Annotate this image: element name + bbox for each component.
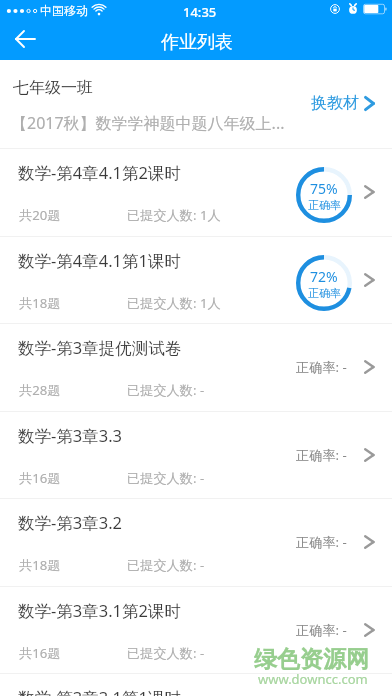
staticText: 正确率: - — [296, 446, 347, 464]
staticText: 数学-第3章3.1第2课时 — [18, 599, 181, 622]
staticText: 已提交人数: - — [127, 381, 205, 399]
staticText: 中国移动 — [40, 3, 88, 18]
staticText: 已提交人数: 1人 — [127, 206, 221, 224]
staticText: www.downcc.com — [258, 670, 368, 688]
button[interactable]: 数学-第3章3.1第1课时 — [0, 674, 392, 696]
staticText: 75% — [310, 179, 338, 198]
button[interactable]: 数学-第4章4.1第2课时 — [0, 149, 392, 236]
staticText: 七年级一班 — [13, 78, 93, 98]
staticText: 数学-第3章3.1第1课时 — [18, 686, 181, 696]
staticText: 已提交人数: 1人 — [127, 294, 221, 312]
staticText: 数学-第3章3.2 — [18, 511, 123, 534]
staticText: 数学-第4章4.1第2课时 — [18, 161, 181, 184]
staticText: 共28题 — [19, 381, 61, 399]
staticText: 正确率 — [308, 198, 341, 212]
staticText: 数学-第3章3.3 — [18, 424, 123, 447]
button[interactable]: 数学-第3章3.2 — [0, 499, 392, 586]
staticText: 72% — [310, 267, 338, 286]
button[interactable]: Back — [6, 20, 44, 58]
staticText: 共16题 — [19, 644, 61, 662]
staticText: 作业列表 — [161, 31, 233, 54]
staticText: 已提交人数: - — [127, 469, 205, 487]
staticText: 共18题 — [19, 294, 61, 312]
staticText: 正确率: - — [296, 621, 347, 639]
staticText: 共18题 — [19, 556, 61, 574]
staticText: 已提交人数: - — [127, 556, 205, 574]
button[interactable]: 换教材 — [311, 93, 376, 113]
staticText: 【2017秋】数学学神题中题八年级上... — [11, 112, 285, 134]
staticText: 绿色资源网 — [254, 645, 369, 674]
staticText: 14:35 — [183, 3, 217, 21]
button[interactable]: 数学-第3章3.3 — [0, 412, 392, 499]
staticText: 已提交人数: - — [127, 644, 205, 662]
button[interactable]: 数学-第4章4.1第1课时 — [0, 237, 392, 324]
staticText: 共16题 — [19, 469, 61, 487]
staticText: 共20题 — [19, 206, 61, 224]
button[interactable]: 数学-第3章3.1第2课时 — [0, 587, 392, 674]
staticText: 正确率: - — [296, 358, 347, 376]
staticText: 正确率: - — [296, 533, 347, 551]
button[interactable]: 数学-第3章提优测试卷 — [0, 324, 392, 411]
staticText: 数学-第4章4.1第1课时 — [18, 249, 181, 272]
staticText: 换教材 — [311, 93, 359, 113]
staticText: 正确率 — [308, 286, 341, 300]
staticText: 数学-第3章提优测试卷 — [18, 336, 182, 359]
